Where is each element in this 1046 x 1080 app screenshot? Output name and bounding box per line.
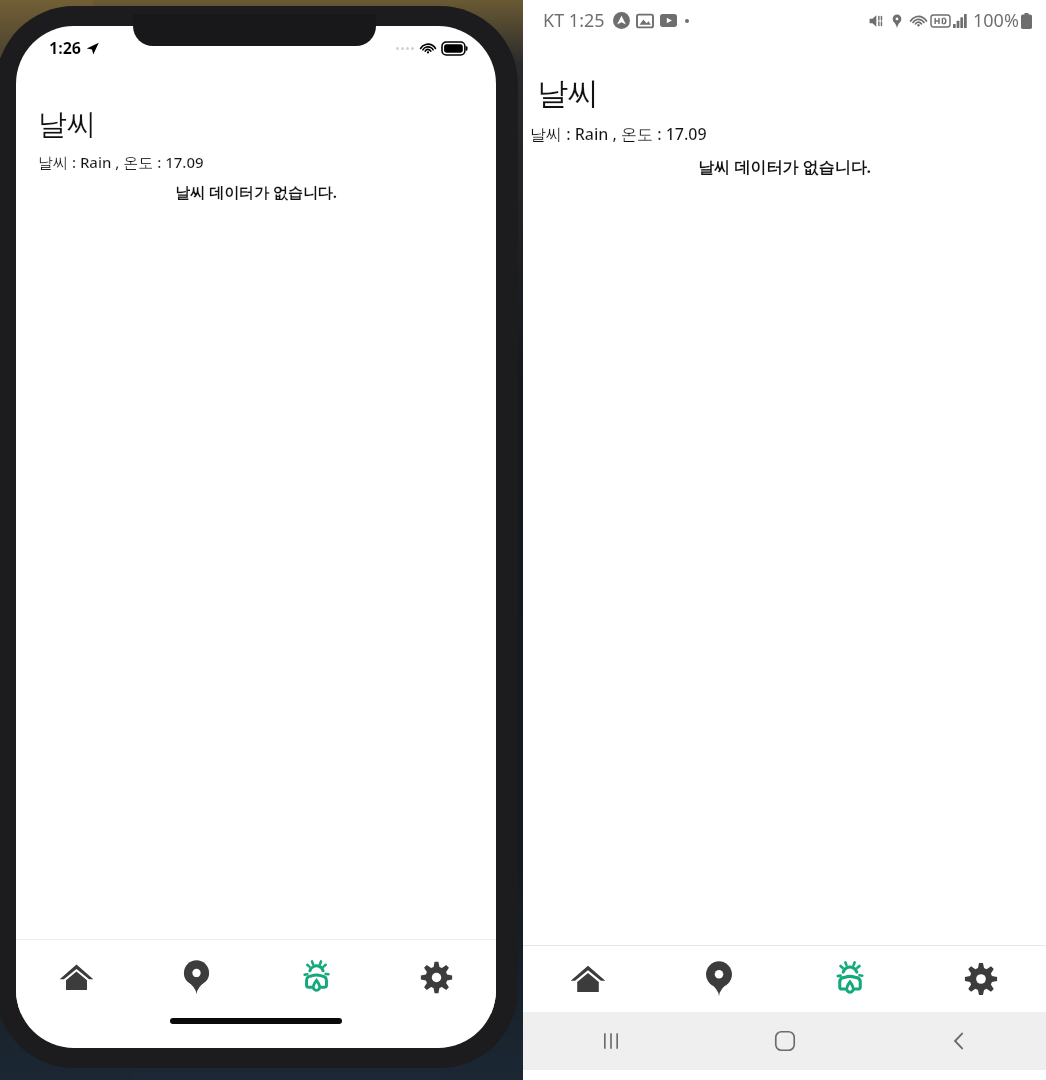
staticText: 날씨 : Rain , 온도 : 17.09 xyxy=(530,123,707,145)
button[interactable]: Home xyxy=(523,946,653,1012)
button[interactable]: Home xyxy=(16,940,136,1014)
staticText: 날씨 데이터가 없습니다. xyxy=(523,156,1046,178)
staticText: 날씨 xyxy=(38,106,96,143)
staticText: 날씨 : Rain , 온도 : 17.09 xyxy=(38,152,204,172)
button[interactable]: Home xyxy=(698,1012,872,1070)
button[interactable]: Location xyxy=(136,940,256,1014)
button[interactable]: Weather xyxy=(784,946,915,1012)
button[interactable]: Location xyxy=(653,946,784,1012)
staticText: KT 1:25 xyxy=(543,8,605,33)
staticText: 날씨 xyxy=(537,74,599,113)
staticText: 100% xyxy=(973,8,1019,33)
button[interactable]: Weather xyxy=(256,940,376,1014)
button[interactable]: Back xyxy=(872,1012,1046,1070)
staticText: 1:26 xyxy=(49,37,81,59)
staticText: 날씨 데이터가 없습니다. xyxy=(16,182,496,202)
button[interactable]: Settings xyxy=(376,940,496,1014)
button[interactable]: Recent apps xyxy=(523,1012,698,1070)
button[interactable]: Settings xyxy=(915,946,1046,1012)
